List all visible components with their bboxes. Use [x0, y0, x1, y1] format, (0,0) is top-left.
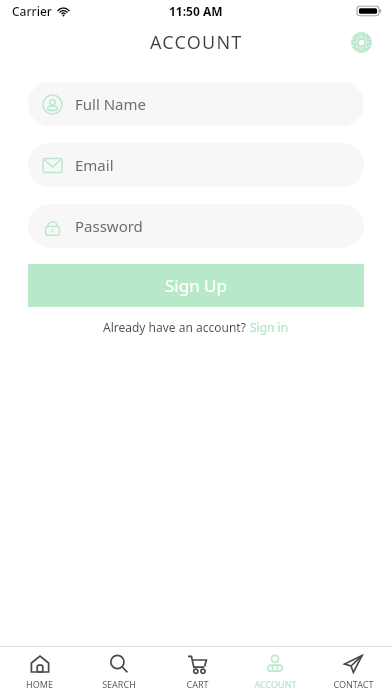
staticText: Carrier: [12, 3, 52, 19]
staticText: Sign Up: [165, 274, 227, 297]
staticText: Full Name: [75, 94, 146, 114]
staticText: CART: [186, 678, 209, 690]
staticText: ACCOUNT: [254, 678, 297, 690]
button[interactable]: Full Name: [28, 82, 364, 126]
staticText: Sign in: [250, 319, 289, 335]
staticText: 11:50 AM: [169, 3, 223, 19]
staticText: CONTACT: [333, 678, 374, 690]
staticText: Already have an account?: [103, 319, 250, 335]
staticText: HOME: [26, 678, 53, 690]
button[interactable]: ACCOUNT: [236, 647, 314, 696]
button[interactable]: SEARCH: [79, 647, 158, 696]
button[interactable]: Password: [28, 204, 364, 248]
staticText: ACCOUNT: [150, 30, 243, 55]
button[interactable]: Sign in: [250, 319, 289, 335]
staticText: Password: [75, 216, 143, 236]
button[interactable]: Sign Up: [28, 264, 364, 307]
button[interactable]: Settings: [344, 25, 378, 59]
staticText: Email: [75, 155, 114, 175]
staticText: SEARCH: [102, 678, 136, 690]
button[interactable]: CART: [158, 647, 236, 696]
button[interactable]: HOME: [0, 647, 79, 696]
button[interactable]: CONTACT: [314, 647, 392, 696]
button[interactable]: Email: [28, 143, 364, 187]
